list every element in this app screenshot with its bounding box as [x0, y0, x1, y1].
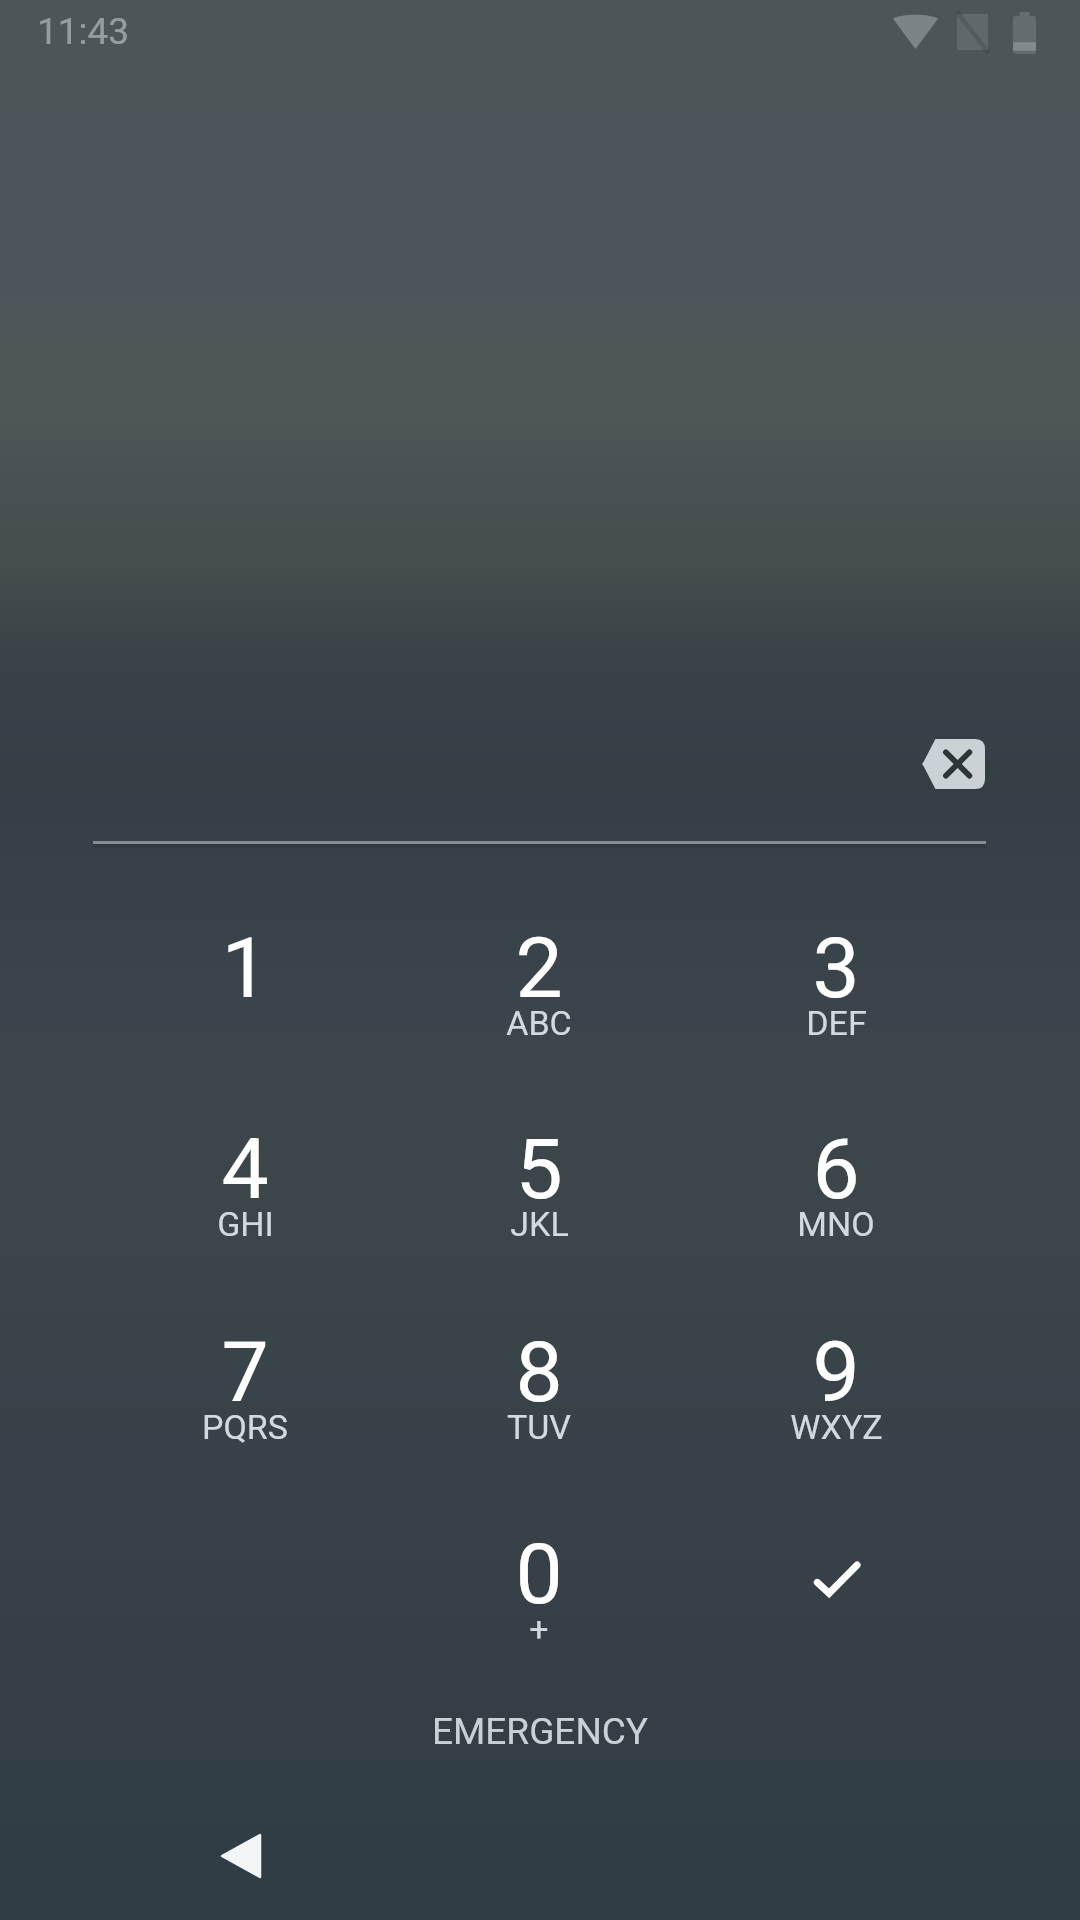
button[interactable]: EMERGENCY	[390, 1694, 690, 1768]
staticText: WXYZ	[790, 1407, 883, 1447]
button[interactable]: Delete	[898, 714, 1008, 814]
button[interactable]: Enter	[726, 1482, 946, 1662]
button[interactable]: 3	[726, 874, 946, 1058]
button[interactable]: 6	[726, 1075, 946, 1259]
staticText: MNO	[797, 1204, 875, 1244]
staticText: GHI	[217, 1204, 274, 1244]
staticText: 2	[515, 919, 563, 1017]
button[interactable]: 0	[429, 1480, 649, 1664]
staticText: TUV	[507, 1407, 571, 1447]
staticText: PQRS	[202, 1407, 288, 1447]
staticText: 0	[515, 1525, 563, 1623]
staticText: 11:43	[37, 10, 130, 53]
button[interactable]: 2	[429, 874, 649, 1058]
button[interactable]: 4	[135, 1075, 355, 1259]
button[interactable]: Back	[181, 1792, 301, 1920]
staticText: 9	[812, 1323, 860, 1421]
staticText: +	[529, 1609, 549, 1649]
button[interactable]: 1	[135, 874, 355, 1058]
button[interactable]: 5	[429, 1075, 649, 1259]
staticText: DEF	[806, 1003, 867, 1043]
button[interactable]: 9	[726, 1278, 946, 1462]
staticText: 8	[515, 1323, 563, 1421]
staticText: 6	[812, 1120, 860, 1218]
staticText: 4	[221, 1120, 269, 1218]
staticText: JKL	[510, 1204, 569, 1244]
staticText: 1	[221, 919, 269, 1017]
staticText: 5	[515, 1120, 563, 1218]
button[interactable]: 7	[135, 1278, 355, 1462]
staticText: EMERGENCY	[432, 1710, 649, 1753]
staticText: 3	[812, 919, 860, 1017]
staticText: ABC	[506, 1003, 572, 1043]
button[interactable]: 8	[429, 1278, 649, 1462]
staticText: 7	[221, 1323, 269, 1421]
